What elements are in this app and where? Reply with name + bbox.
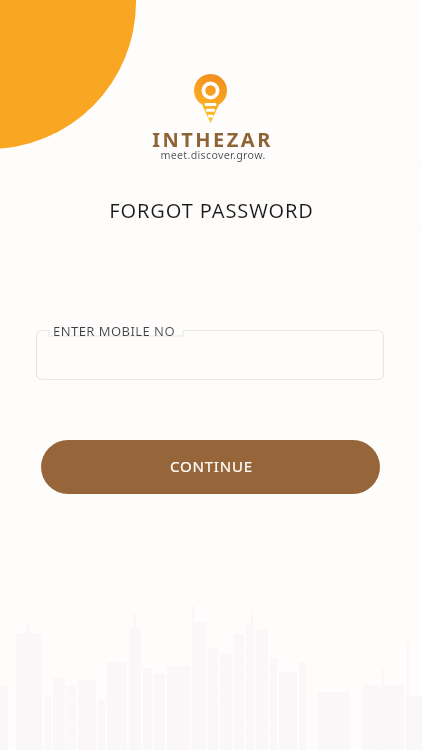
staticText: meet.discover.grow. <box>160 148 266 163</box>
staticText: INTHEZAR <box>152 126 273 153</box>
staticText: CONTINUE <box>170 456 253 476</box>
staticText: ENTER MOBILE NO <box>53 322 176 340</box>
button[interactable]: CONTINUE <box>41 440 380 494</box>
staticText: FORGOT PASSWORD <box>109 197 314 224</box>
